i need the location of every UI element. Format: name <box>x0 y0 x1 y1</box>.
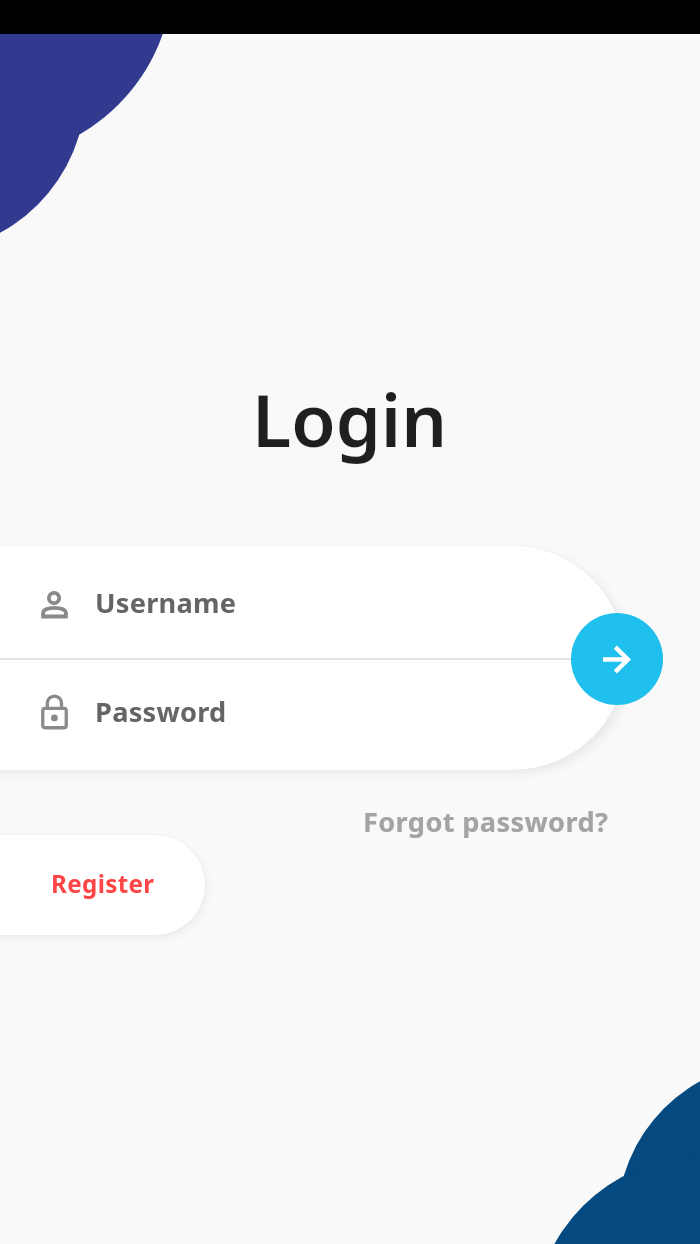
button[interactable]: Sign in <box>571 613 663 705</box>
staticText: Register <box>51 867 155 900</box>
staticText: Username <box>95 584 237 621</box>
button[interactable]: Password <box>0 660 625 770</box>
button[interactable]: Forgot password? <box>351 795 621 848</box>
button[interactable]: Username <box>0 546 625 658</box>
staticText: Forgot password? <box>363 803 609 840</box>
staticText: Password <box>95 693 227 730</box>
staticText: Login <box>252 370 448 468</box>
button[interactable]: Register <box>0 835 205 935</box>
